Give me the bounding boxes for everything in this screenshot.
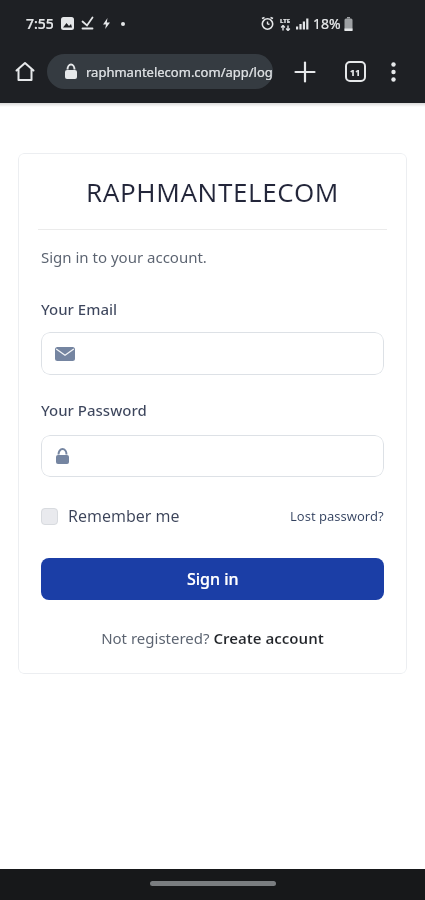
staticText: 18% (313, 14, 341, 33)
staticText: LTE (280, 17, 291, 25)
staticText: Remember me (68, 505, 180, 527)
staticText: Your Password (41, 400, 147, 420)
staticText: Sign in (187, 568, 239, 590)
staticText: 7:55 (26, 14, 54, 33)
staticText: raphmantelecom.com/app/log (86, 63, 273, 81)
staticText: Your Email (41, 299, 118, 319)
staticText: Not registered? Create account (41, 628, 384, 648)
staticText: RAPHMANTELECOM (18, 174, 407, 209)
staticText: Sign in to your account. (41, 247, 207, 267)
staticText: Lost password? (290, 507, 384, 525)
staticText: 11 (350, 66, 361, 78)
